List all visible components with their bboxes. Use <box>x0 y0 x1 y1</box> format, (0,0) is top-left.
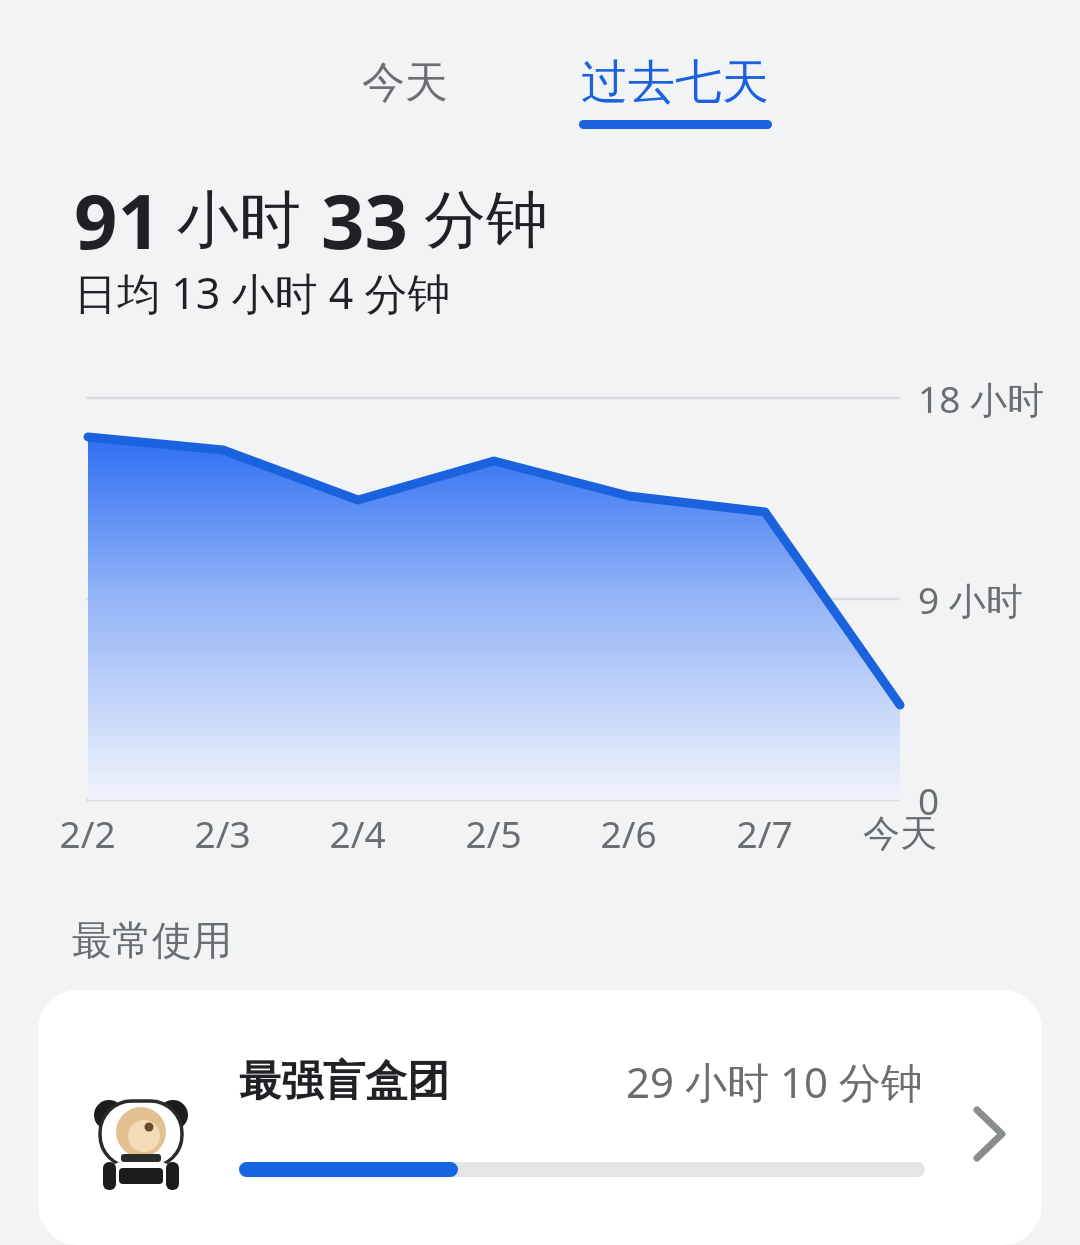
button[interactable] <box>280 30 530 138</box>
button[interactable] <box>550 30 800 138</box>
button[interactable]: 最强盲盒团 29 小时 10 分钟 <box>38 990 1042 1245</box>
